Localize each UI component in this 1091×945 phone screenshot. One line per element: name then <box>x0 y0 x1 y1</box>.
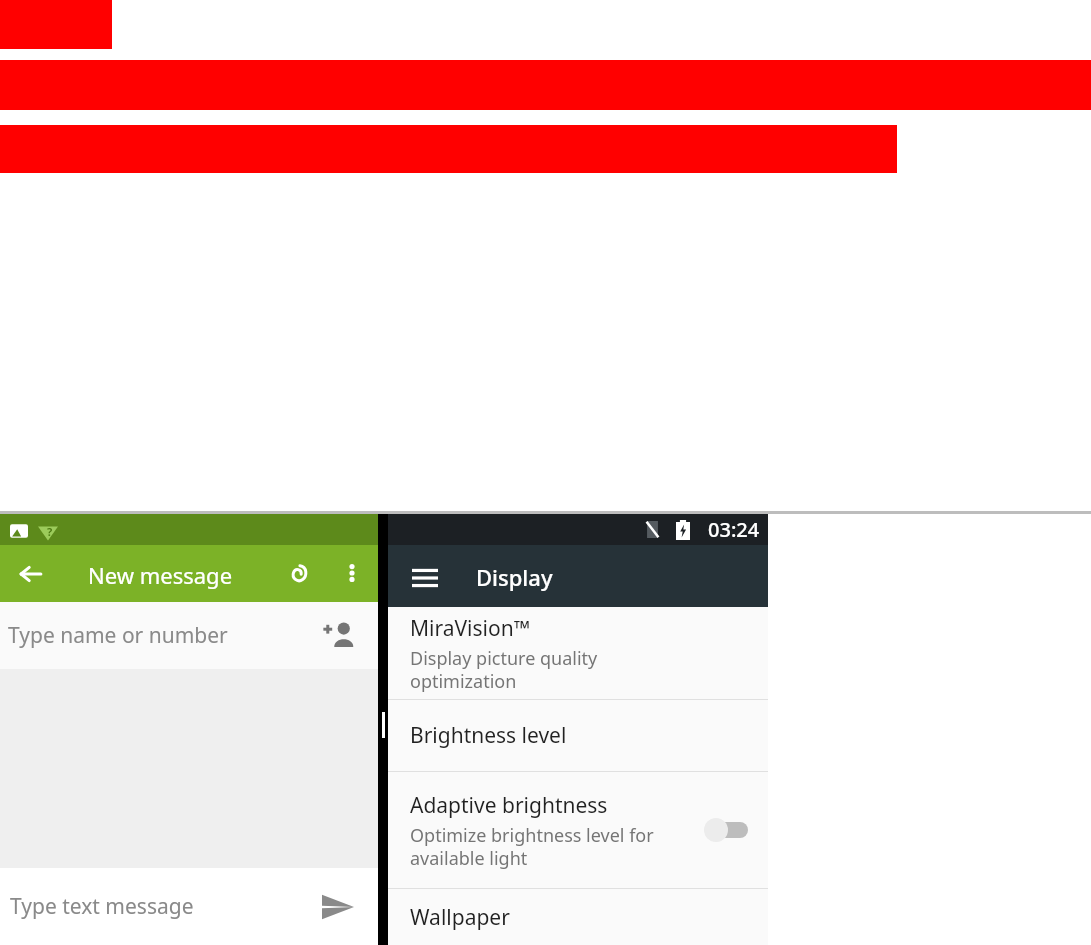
button[interactable]: Attach <box>282 557 318 593</box>
button[interactable]: More options <box>336 557 368 589</box>
staticText: MiraVision™ <box>410 614 530 643</box>
staticText: Type name or number <box>8 621 228 650</box>
staticText: Adaptive brightness <box>410 791 608 820</box>
button[interactable]: Adaptive brightness toggle <box>704 818 750 842</box>
button[interactable]: Adaptive brightness <box>388 772 768 888</box>
button[interactable]: Open navigation drawer <box>410 563 440 593</box>
button[interactable]: Wallpaper <box>388 889 768 945</box>
staticText: Type text message <box>10 892 194 921</box>
button[interactable]: Add contact <box>322 619 356 653</box>
button[interactable]: Brightness level <box>388 700 768 771</box>
button[interactable]: Back <box>14 557 48 591</box>
button[interactable]: Send <box>316 885 360 929</box>
staticText: New message <box>88 560 233 590</box>
button[interactable]: Type name or number <box>0 602 378 669</box>
staticText: Wallpaper <box>410 903 510 932</box>
button[interactable]: MiraVision™ <box>388 607 768 699</box>
staticText: Display picture quality optimization <box>410 646 678 693</box>
staticText: Brightness level <box>410 721 567 750</box>
staticText: Display <box>476 562 553 592</box>
staticText: 03:24 <box>708 516 760 543</box>
staticText: Optimize brightness level for available … <box>410 823 654 870</box>
staticText: ? <box>47 524 53 539</box>
